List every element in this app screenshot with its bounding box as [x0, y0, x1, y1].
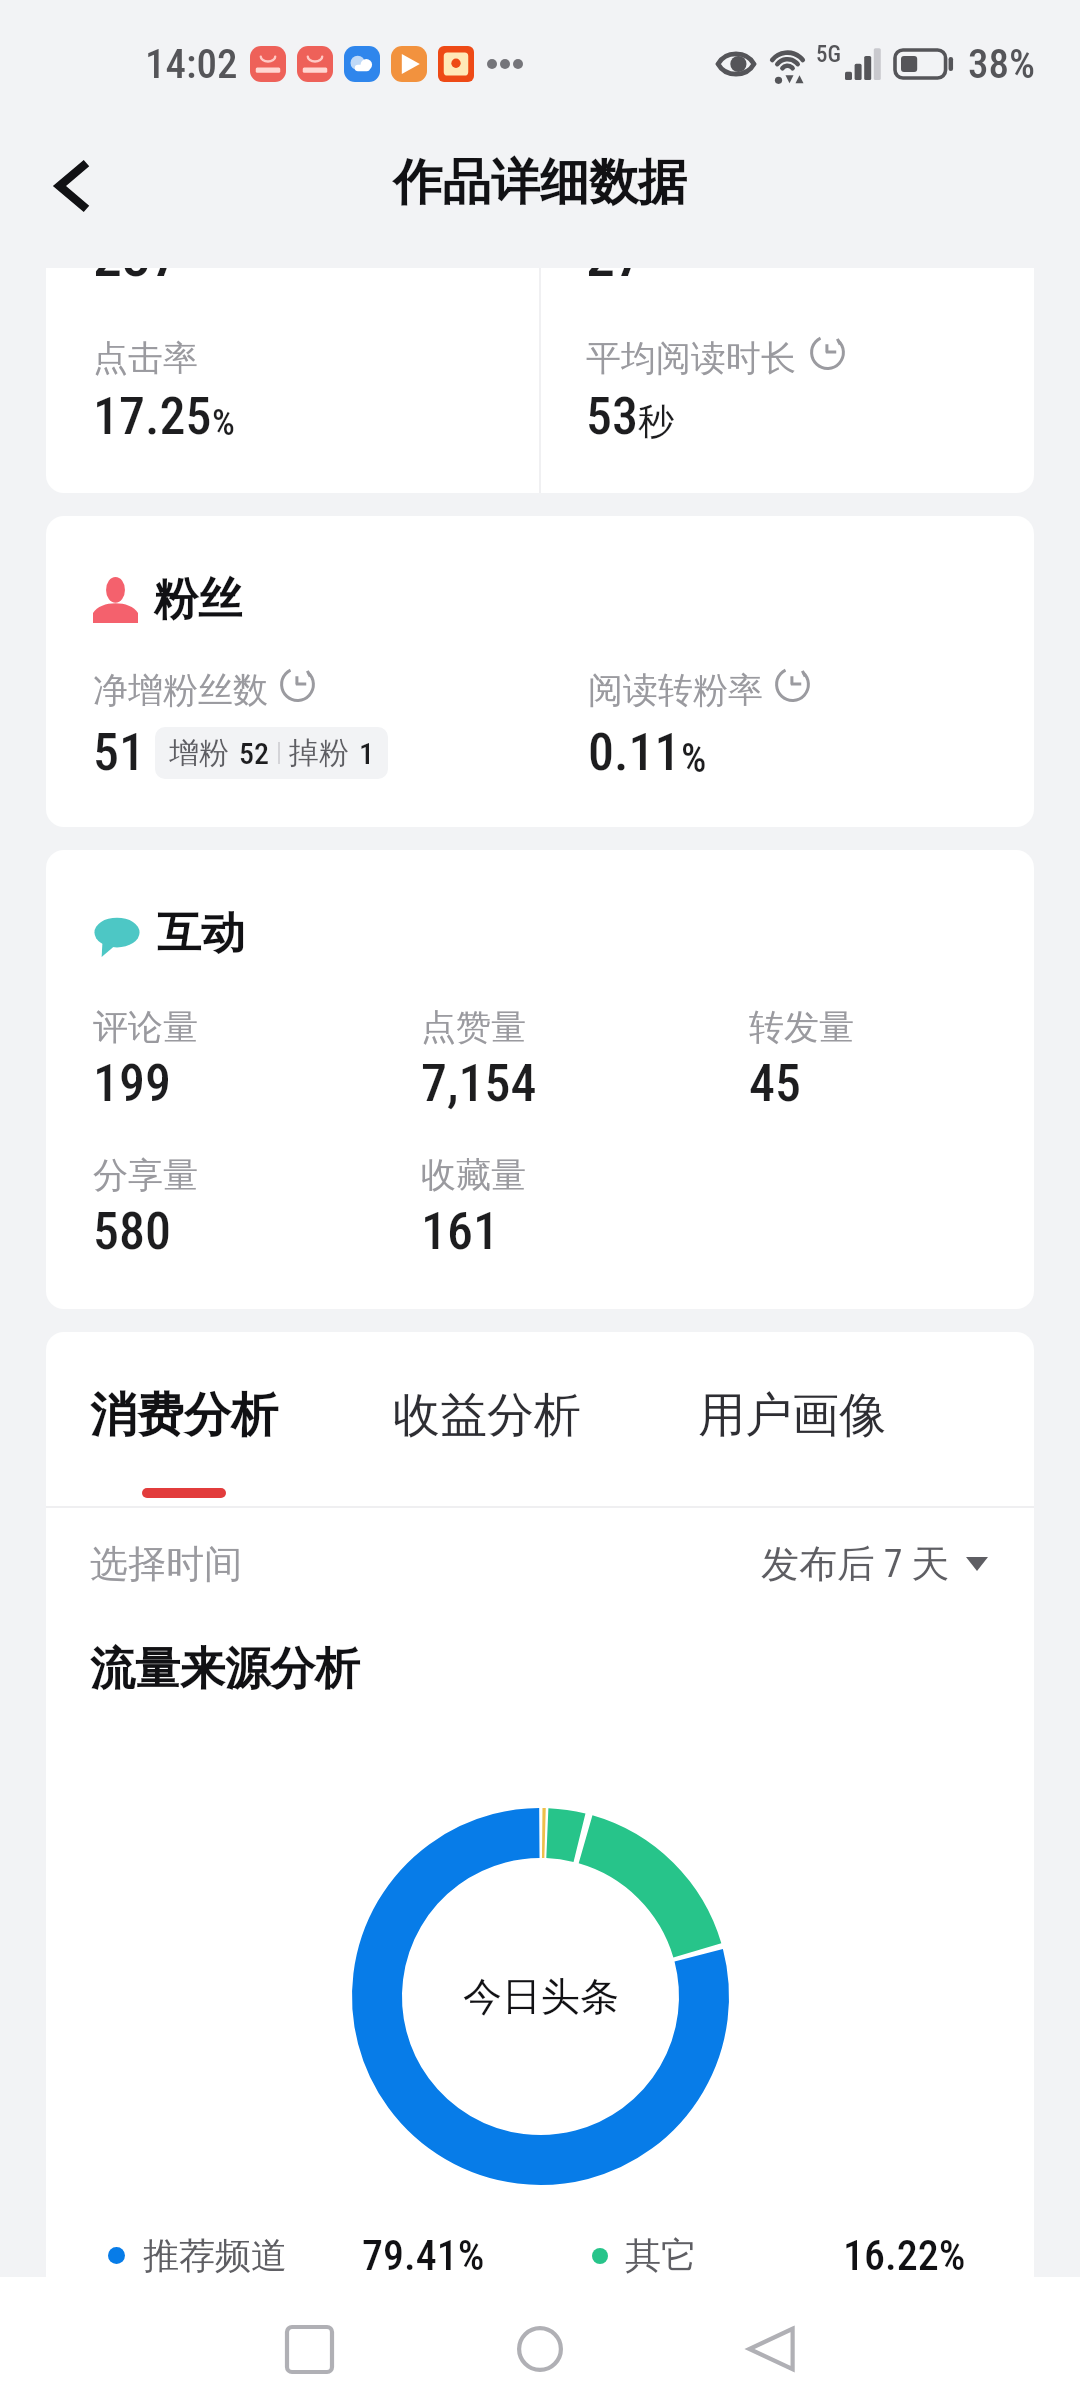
button[interactable]: Back: [725, 2303, 817, 2395]
staticText: 27: [586, 268, 644, 290]
staticText: 发布后 7 天: [761, 1540, 950, 1588]
staticText: 互动: [157, 906, 245, 961]
staticText: 评论量: [93, 1005, 198, 1049]
staticText: 增粉: [169, 734, 229, 772]
staticText: 转发量: [749, 1005, 854, 1049]
staticText: 79.41%: [362, 2231, 485, 2280]
staticText: 52: [239, 736, 269, 771]
staticText: 17.25: [93, 386, 212, 447]
staticText: 16.22%: [843, 2231, 966, 2280]
button[interactable]: 发布后 7 天: [761, 1540, 988, 1588]
staticText: 38%: [968, 40, 1036, 88]
staticText: 45: [749, 1053, 801, 1114]
staticText: 0.11: [588, 722, 681, 783]
staticText: 53: [586, 386, 638, 447]
button[interactable]: Recent apps: [263, 2303, 355, 2395]
staticText: 选择时间: [90, 1540, 242, 1588]
button[interactable]: 消费分析: [90, 1386, 278, 1506]
staticText: 199: [93, 1053, 171, 1114]
staticText: 消费分析: [90, 1386, 278, 1445]
staticText: 其它: [625, 2233, 697, 2278]
staticText: 1: [359, 736, 374, 771]
staticText: 点赞量: [421, 1005, 526, 1049]
staticText: 7,154: [421, 1053, 537, 1114]
staticText: 237: [93, 268, 180, 290]
staticText: 5G: [816, 41, 842, 68]
button[interactable]: Back: [26, 138, 122, 234]
button[interactable]: 收益分析: [393, 1386, 581, 1506]
staticText: 51: [93, 722, 145, 783]
staticText: 粉丝: [154, 572, 242, 627]
staticText: 秒: [638, 399, 674, 444]
staticText: 作品详细数据: [393, 152, 687, 214]
staticText: 分享量: [93, 1153, 198, 1197]
staticText: 161: [421, 1201, 499, 1262]
staticText: 掉粉: [289, 734, 349, 772]
staticText: 收藏量: [421, 1153, 526, 1197]
staticText: 净增粉丝数: [93, 668, 268, 712]
staticText: %: [212, 402, 235, 444]
staticText: 推荐频道: [143, 2233, 287, 2278]
staticText: 今日头条: [463, 1972, 619, 2021]
staticText: 用户画像: [698, 1386, 886, 1445]
staticText: %: [681, 735, 707, 782]
button[interactable]: Home: [494, 2303, 586, 2395]
staticText: 14:02: [145, 40, 238, 88]
staticText: 收益分析: [393, 1386, 581, 1445]
staticText: 流量来源分析: [90, 1641, 360, 1698]
staticText: 580: [93, 1201, 171, 1262]
staticText: 点击率: [93, 336, 198, 380]
staticText: 阅读转粉率: [588, 668, 763, 712]
staticText: 平均阅读时长: [586, 336, 796, 380]
button[interactable]: 用户画像: [698, 1386, 886, 1506]
